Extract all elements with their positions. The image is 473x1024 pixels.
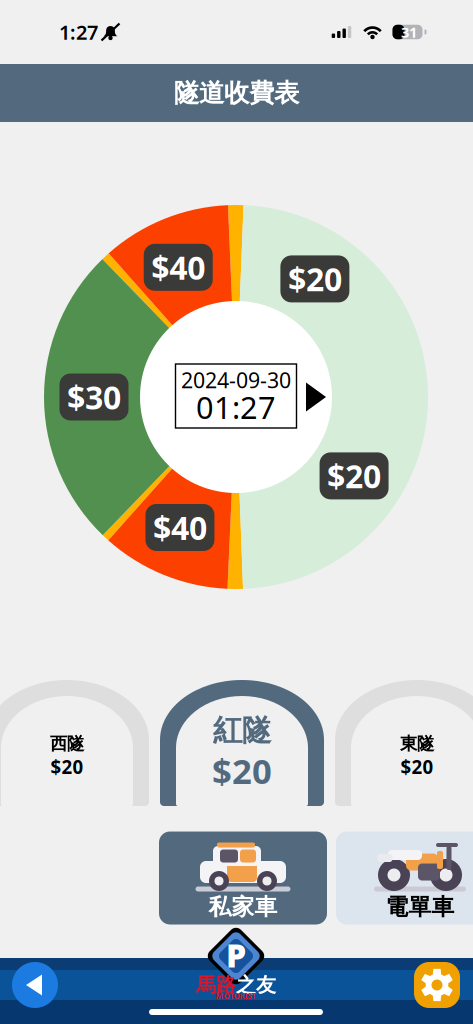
button[interactable]: 私家車 bbox=[159, 831, 327, 924]
staticText: 31 bbox=[401, 22, 417, 42]
staticText: 之友 bbox=[236, 973, 276, 997]
staticText: $20 bbox=[400, 754, 433, 779]
staticText: $20 bbox=[50, 754, 83, 779]
staticText: $20 bbox=[327, 455, 381, 497]
button[interactable]: 東隧 bbox=[335, 680, 473, 806]
button[interactable]: 紅隧 bbox=[160, 680, 324, 806]
staticText: 私家車 bbox=[208, 893, 277, 921]
staticText: $40 bbox=[151, 246, 205, 288]
staticText: 2024-09-30 bbox=[181, 366, 291, 394]
staticText: $20 bbox=[212, 747, 272, 793]
staticText: MOTORIST bbox=[215, 991, 256, 1001]
staticText: $20 bbox=[288, 258, 342, 300]
staticText: 1:27 bbox=[59, 19, 98, 45]
button[interactable]: 西隧 bbox=[0, 680, 149, 806]
staticText: 01:27 bbox=[196, 387, 276, 427]
staticText: $30 bbox=[67, 376, 121, 418]
staticText: 紅隧 bbox=[213, 712, 271, 748]
button[interactable]: Back bbox=[8, 958, 62, 1012]
staticText: P bbox=[226, 934, 246, 976]
staticText: 馬路 bbox=[196, 973, 236, 997]
staticText: 隧道收費表 bbox=[174, 77, 299, 108]
button[interactable]: 電單車 bbox=[336, 831, 473, 924]
staticText: 東隧 bbox=[400, 733, 434, 754]
staticText: $40 bbox=[153, 506, 207, 549]
button[interactable]: Settings bbox=[410, 958, 464, 1012]
staticText: 西隧 bbox=[50, 733, 84, 754]
staticText: 電單車 bbox=[385, 893, 454, 921]
